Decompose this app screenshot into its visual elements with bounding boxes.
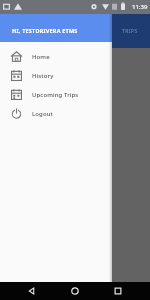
button[interactable]: Logout [0,104,112,123]
staticText: Logout [32,110,53,118]
staticText: Home [32,53,50,61]
button[interactable]: Home [64,282,86,300]
staticText: HI, TESTDRIVERA ETMS [12,27,78,34]
button[interactable]: History [0,66,112,85]
staticText: 11:39 [132,3,148,11]
staticText: Upcoming Trips [32,91,79,99]
button[interactable]: Back [21,282,43,300]
button[interactable]: Recent apps [107,282,129,300]
button[interactable]: Home [0,47,112,66]
staticText: TRIPS [122,28,138,35]
button[interactable]: Upcoming Trips [0,85,112,104]
staticText: History [32,72,54,80]
